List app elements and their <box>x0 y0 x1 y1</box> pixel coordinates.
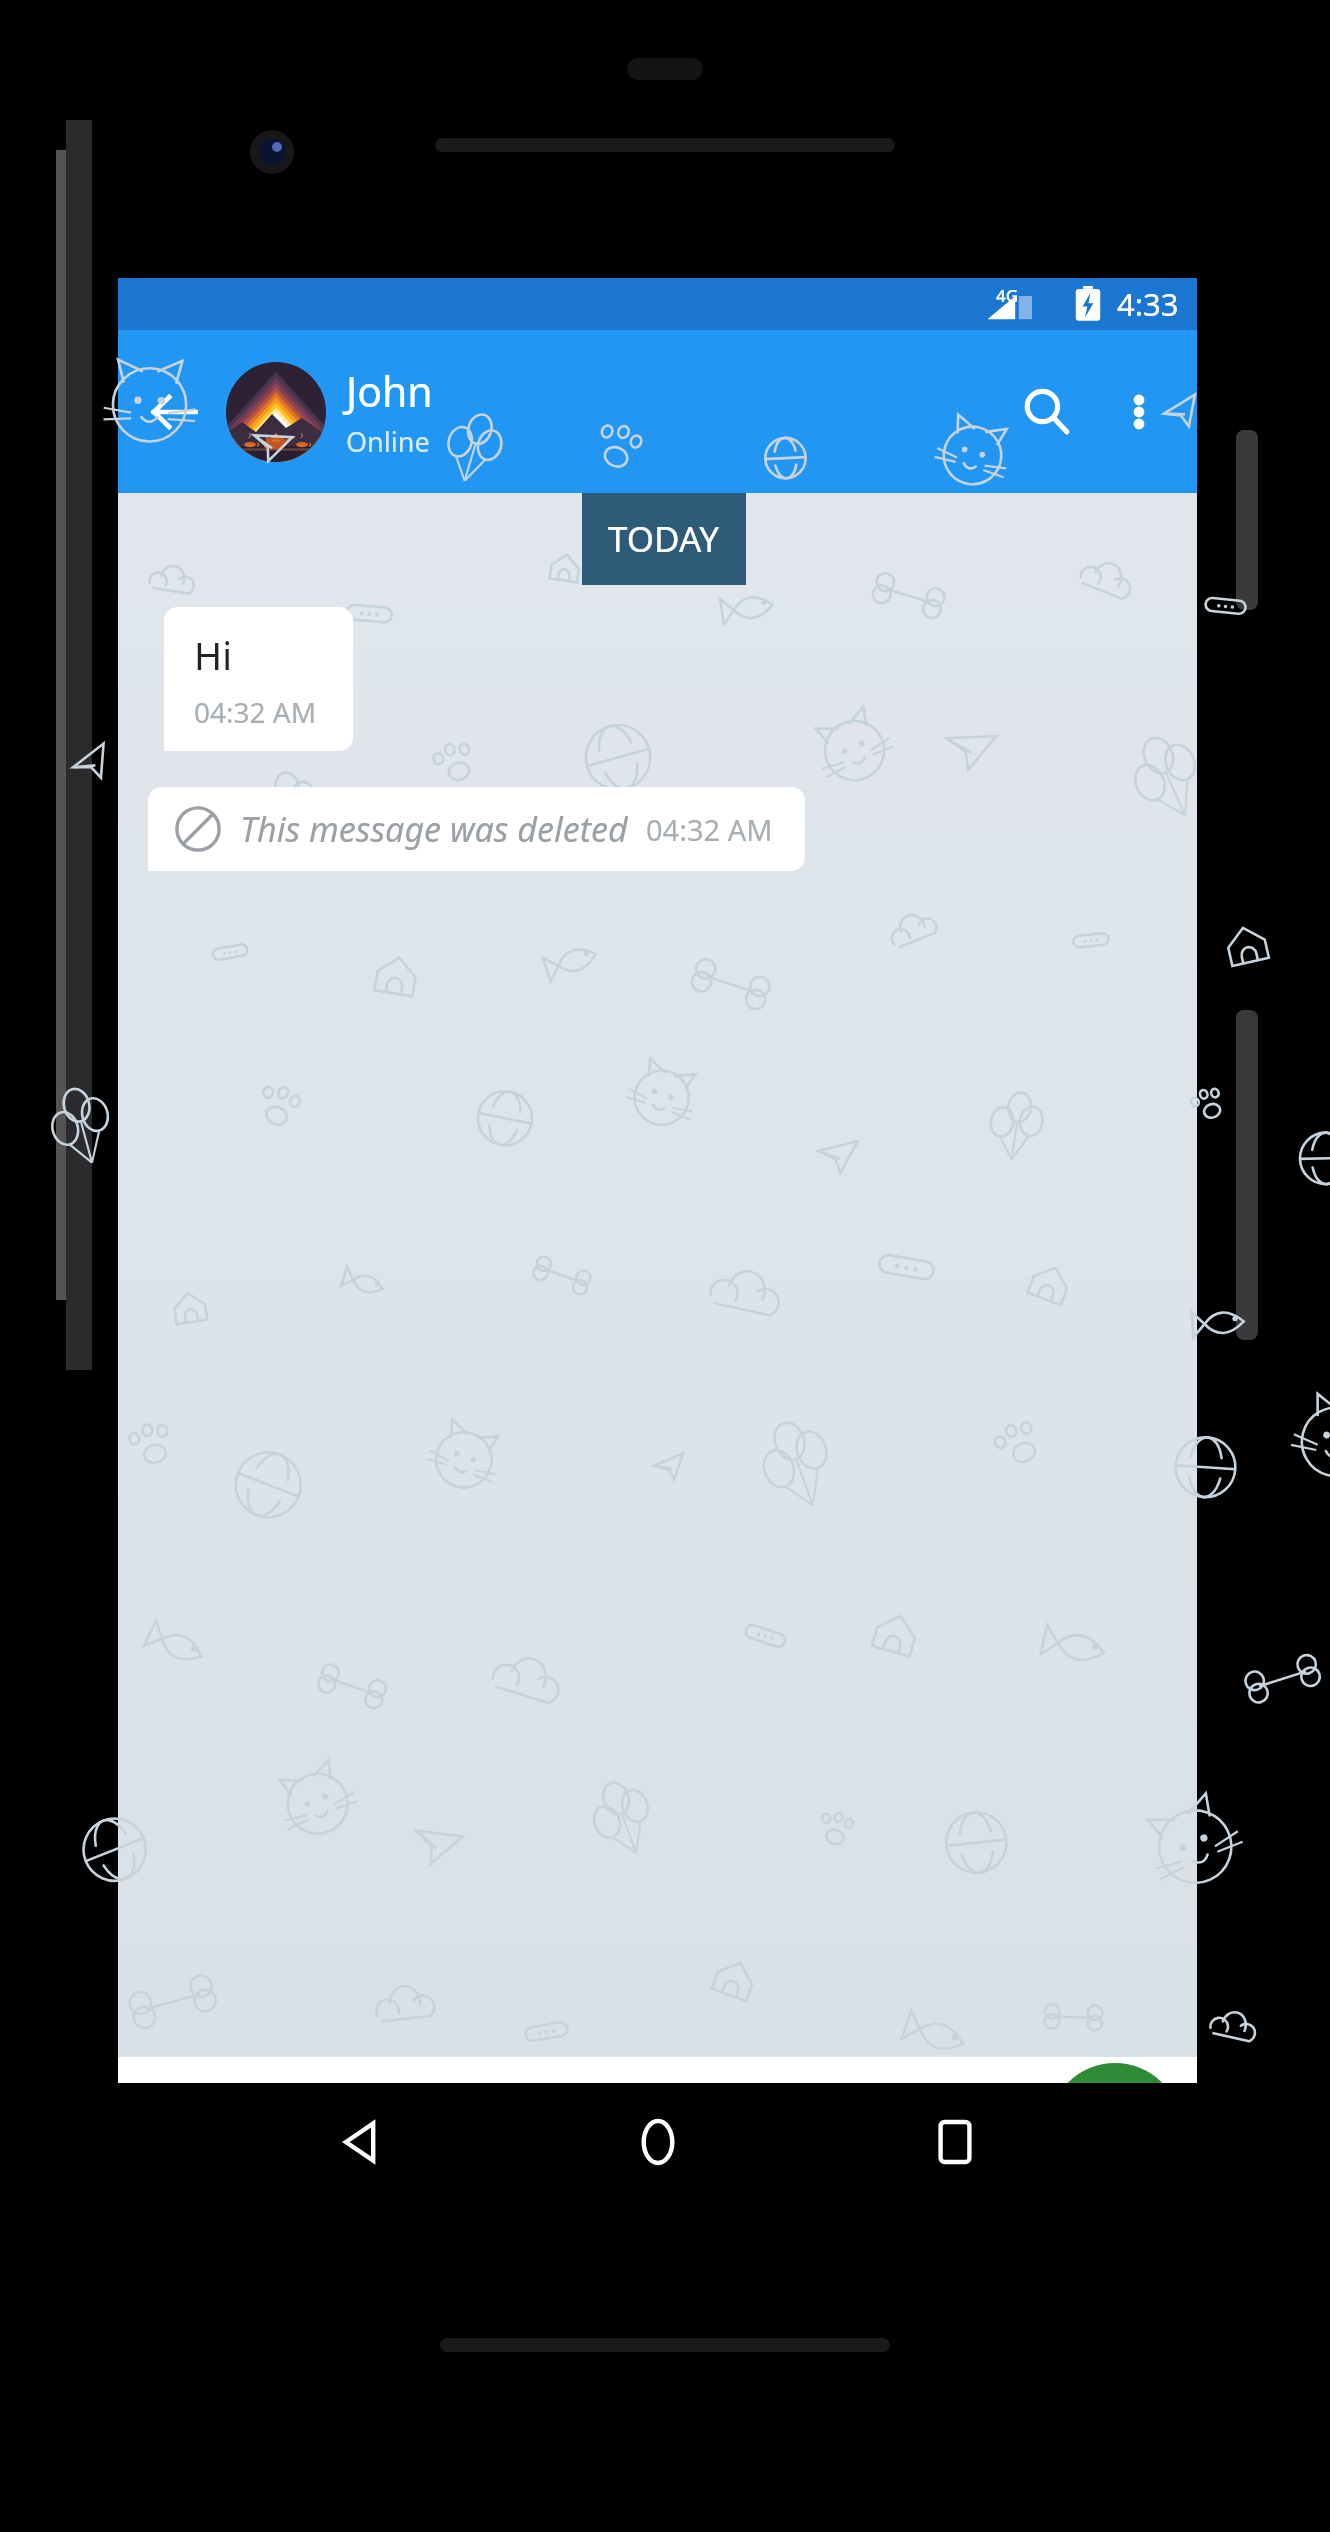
button[interactable]: Home <box>603 2087 713 2197</box>
button[interactable]: Record voice message <box>1049 2063 1181 2195</box>
staticText: TODAY <box>608 515 720 563</box>
staticText: 04:32 AM <box>194 693 317 731</box>
button[interactable]: Search <box>1001 366 1093 458</box>
button[interactable]: John <box>346 363 1001 460</box>
button[interactable]: John profile photo <box>226 362 326 462</box>
staticText: 04:32 AM <box>646 810 773 849</box>
button[interactable]: Recent apps <box>900 2087 1010 2197</box>
staticText: John <box>346 363 433 419</box>
staticText: 4G <box>996 284 1019 307</box>
staticText: Write your message <box>236 2103 593 2155</box>
button[interactable]: TODAY <box>582 493 746 585</box>
staticText: Hi <box>194 629 232 681</box>
button[interactable]: Camera <box>947 2081 1043 2177</box>
button[interactable]: Attach file <box>851 2081 947 2177</box>
staticText: Online <box>346 423 430 460</box>
button[interactable]: Back <box>305 2087 415 2197</box>
button[interactable]: Hi <box>164 607 353 751</box>
button[interactable]: Back <box>132 370 216 454</box>
button[interactable]: This message was deleted <box>148 787 805 871</box>
button[interactable]: Write your message <box>236 2057 851 2200</box>
staticText: 4:33 <box>1117 283 1179 325</box>
staticText: This message was deleted <box>240 806 628 852</box>
button[interactable]: More options <box>1093 366 1185 458</box>
